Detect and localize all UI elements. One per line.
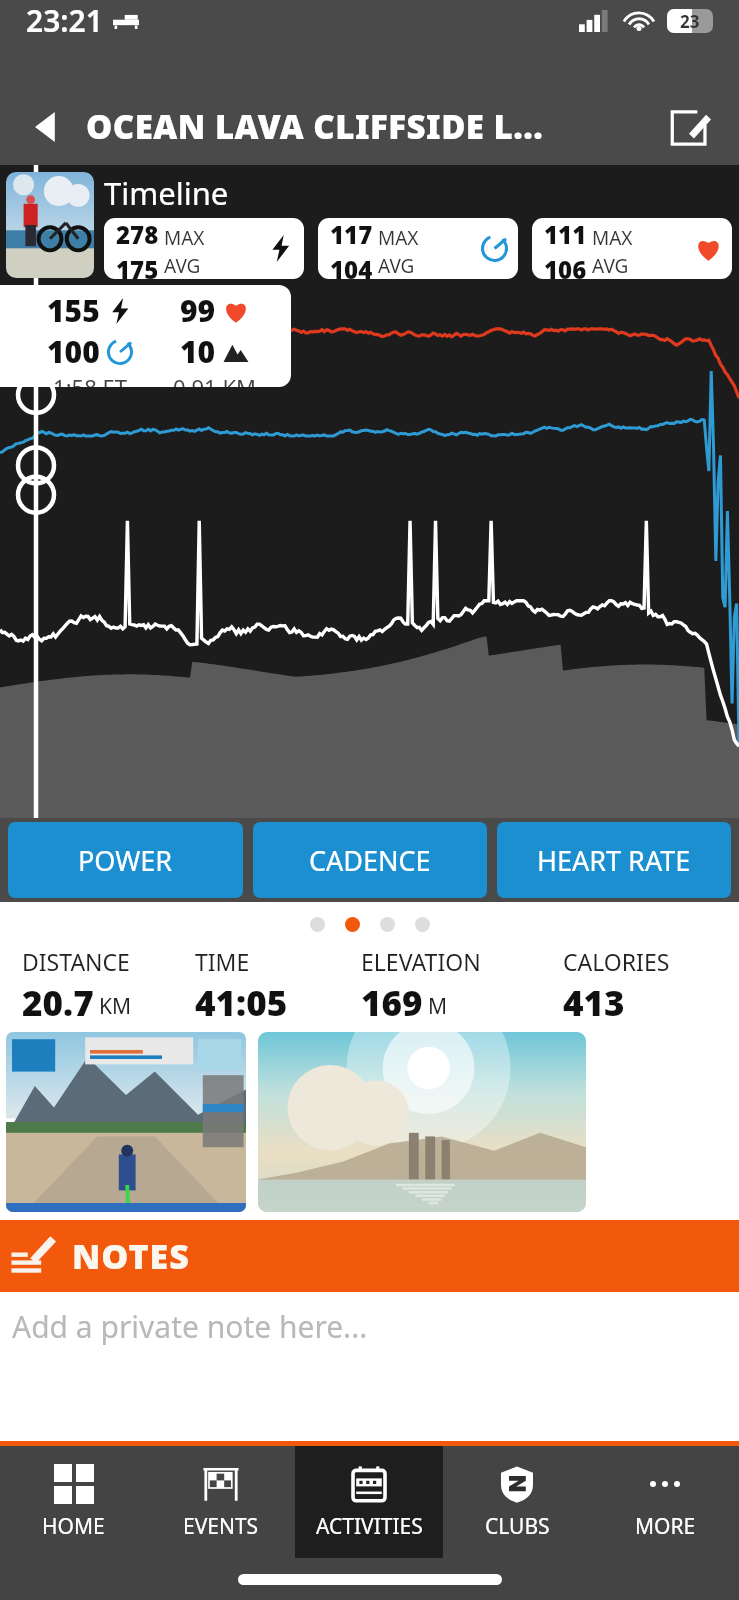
- staticText: 117: [330, 218, 373, 251]
- staticText: MORE: [635, 1512, 696, 1541]
- staticText: Timeline: [104, 172, 229, 214]
- staticText: 100: [47, 331, 100, 372]
- button[interactable]: HEART RATE: [497, 822, 731, 898]
- staticText: MAX: [592, 225, 633, 251]
- staticText: 155: [47, 290, 100, 331]
- staticText: 111: [544, 218, 587, 251]
- staticText: CADENCE: [309, 842, 431, 879]
- staticText: 23: [680, 10, 700, 33]
- button[interactable]: NOTES: [10, 1220, 739, 1292]
- button[interactable]: 278: [104, 218, 304, 279]
- button[interactable]: MORE: [591, 1446, 739, 1558]
- staticText: ACTIVITIES: [316, 1512, 423, 1541]
- staticText: NOTES: [72, 1233, 190, 1279]
- button[interactable]: CADENCE: [253, 822, 487, 898]
- staticText: 169: [361, 979, 423, 1024]
- staticText: OCEAN LAVA CLIFFSIDE L...: [86, 104, 544, 149]
- button[interactable]: POWER: [8, 822, 243, 898]
- button[interactable]: Page dot: [310, 917, 325, 932]
- button[interactable]: 155: [0, 285, 291, 387]
- button[interactable]: 111: [532, 218, 732, 279]
- button[interactable]: ACTIVITIES: [295, 1446, 443, 1558]
- staticText: 278: [116, 218, 159, 251]
- button[interactable]: DISTANCE: [22, 946, 195, 1024]
- staticText: 41:05: [195, 979, 288, 1024]
- button[interactable]: Page dot: [345, 917, 360, 932]
- button[interactable]: HOME: [0, 1446, 147, 1558]
- staticText: HOME: [42, 1512, 105, 1541]
- staticText: 106: [544, 253, 587, 279]
- button[interactable]: Ride screenshot: [6, 1032, 246, 1212]
- staticText: 0.91 KM: [152, 372, 277, 387]
- staticText: 1:58 ET: [28, 372, 152, 387]
- staticText: HEART RATE: [537, 842, 691, 879]
- staticText: 104: [330, 253, 373, 279]
- staticText: EVENTS: [183, 1512, 259, 1541]
- staticText: MAX: [378, 225, 419, 251]
- button[interactable]: Add a private note here...: [12, 1292, 739, 1388]
- staticText: TIME: [195, 946, 250, 977]
- staticText: ELEVATION: [361, 946, 481, 977]
- button[interactable]: CLUBS: [443, 1446, 591, 1558]
- staticText: 10: [180, 331, 216, 372]
- staticText: M: [428, 992, 448, 1021]
- button[interactable]: ELEVATION: [361, 946, 563, 1024]
- staticText: 20.7: [22, 979, 94, 1024]
- staticText: KM: [99, 992, 132, 1021]
- staticText: 175: [116, 253, 159, 279]
- staticText: CLUBS: [485, 1512, 550, 1541]
- button[interactable]: TIME: [195, 946, 361, 1024]
- button[interactable]: Page dot: [380, 917, 395, 932]
- staticText: 413: [563, 979, 625, 1024]
- button[interactable]: CALORIES: [563, 946, 729, 1024]
- staticText: AVG: [592, 253, 629, 279]
- button[interactable]: Page dot: [415, 917, 430, 932]
- staticText: 99: [180, 290, 216, 331]
- staticText: AVG: [378, 253, 415, 279]
- staticText: POWER: [78, 842, 173, 879]
- button[interactable]: EVENTS: [147, 1446, 295, 1558]
- staticText: DISTANCE: [22, 946, 130, 977]
- staticText: CALORIES: [563, 946, 670, 977]
- button[interactable]: [6, 172, 94, 278]
- staticText: 23:21: [26, 0, 103, 41]
- button[interactable]: Edit: [663, 101, 715, 153]
- staticText: Add a private note here...: [12, 1306, 368, 1347]
- staticText: MAX: [164, 225, 205, 251]
- staticText: AVG: [164, 253, 201, 279]
- button[interactable]: Scenery screenshot: [258, 1032, 586, 1212]
- button[interactable]: Back: [24, 105, 68, 149]
- button[interactable]: 117: [318, 218, 518, 279]
